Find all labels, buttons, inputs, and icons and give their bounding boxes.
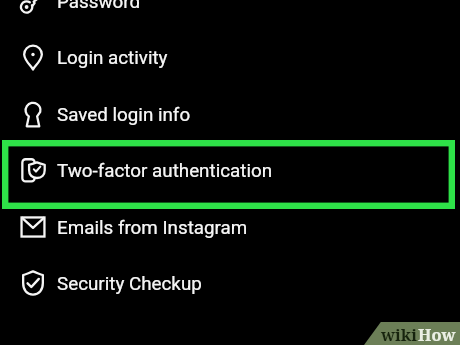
staticText: How	[418, 323, 456, 345]
staticText: wiki	[381, 323, 418, 345]
staticText: Saved login info	[57, 104, 191, 126]
button[interactable]: Security Checkup	[0, 258, 460, 310]
staticText: Two-factor authentication	[57, 160, 273, 182]
button[interactable]: Saved login info	[0, 89, 460, 141]
button[interactable]: Emails from Instagram	[0, 202, 460, 254]
staticText: Security Checkup	[57, 273, 202, 295]
button[interactable]: Login activity	[0, 32, 460, 84]
button[interactable]: Two-factor authentication	[0, 145, 460, 197]
staticText: Password	[57, 0, 141, 13]
staticText: Emails from Instagram	[57, 217, 248, 239]
staticText: Login activity	[57, 47, 168, 69]
button[interactable]: Password	[0, 0, 460, 28]
